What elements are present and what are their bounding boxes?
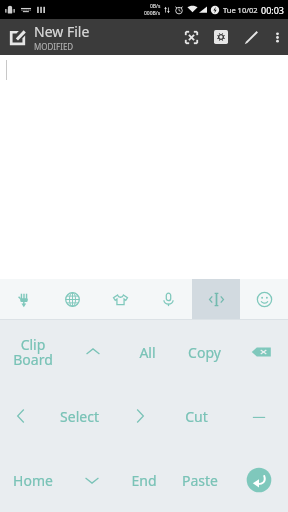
button[interactable]: Space	[229, 384, 288, 448]
staticText: 0B/s	[150, 3, 161, 10]
button[interactable]: End	[118, 448, 170, 512]
button[interactable]: Keyboard theme	[96, 279, 144, 319]
button[interactable]: Clip Board	[0, 320, 65, 384]
staticText: Copy	[188, 343, 221, 362]
button[interactable]: Cursor control	[192, 279, 240, 319]
button[interactable]: Copy	[175, 320, 233, 384]
button[interactable]: Handwriting input	[0, 279, 48, 319]
staticText: End	[131, 471, 157, 490]
button[interactable]: Cut	[163, 384, 229, 448]
button[interactable]: Edit	[236, 19, 266, 55]
staticText: Select	[60, 407, 99, 426]
button[interactable]: Paste	[170, 448, 230, 512]
staticText: New File	[34, 22, 90, 41]
button[interactable]: New file	[0, 19, 34, 55]
button[interactable]: Select	[42, 384, 117, 448]
button[interactable]: Left	[0, 384, 42, 448]
staticText: All	[139, 343, 156, 362]
button[interactable]: Home	[0, 448, 66, 512]
staticText: 00:03	[261, 4, 285, 16]
staticText: MODIFIED	[34, 41, 74, 52]
button[interactable]: All	[120, 320, 175, 384]
button[interactable]: Backspace	[233, 320, 288, 384]
staticText: Paste	[182, 471, 218, 490]
button[interactable]: Fullscreen	[176, 19, 206, 55]
button[interactable]: More options	[266, 19, 288, 55]
button[interactable]: Up	[65, 320, 120, 384]
button[interactable]: Voice input	[144, 279, 192, 319]
button[interactable]: Settings	[206, 19, 236, 55]
button[interactable]: Emoji	[240, 279, 288, 319]
staticText: Tue 10/02	[223, 5, 258, 15]
staticText: Clip Board	[13, 335, 53, 369]
button[interactable]: Enter	[230, 448, 288, 512]
staticText: Cut	[185, 407, 208, 426]
button[interactable]: Right	[117, 384, 163, 448]
button[interactable]: Change language	[48, 279, 96, 319]
staticText: Home	[13, 471, 53, 490]
button[interactable]: Down	[66, 448, 118, 512]
staticText: 000B/s	[144, 10, 161, 17]
